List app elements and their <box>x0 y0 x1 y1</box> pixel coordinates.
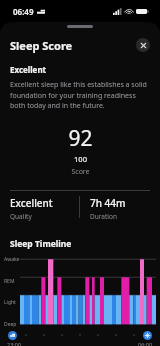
staticText: Sleep Timeline <box>10 238 72 250</box>
button[interactable]: Sleep start <box>8 331 17 340</box>
staticText: Light <box>4 299 16 306</box>
staticText: Duration <box>90 212 117 221</box>
staticText: 23:00 <box>7 341 22 346</box>
staticText: 92 <box>68 124 93 153</box>
staticText: 100 <box>74 154 87 164</box>
staticText: 06:00 <box>138 341 153 346</box>
button[interactable]: Close <box>136 38 150 52</box>
staticText: Awake <box>4 256 20 263</box>
staticText: REM <box>4 278 15 285</box>
staticText: Excellent <box>10 196 53 210</box>
staticText: Excellent <box>10 64 47 75</box>
staticText: 06:49 <box>13 6 34 17</box>
staticText: Quality <box>10 212 32 221</box>
staticText: Sleep Score <box>10 38 73 53</box>
staticText: Score <box>71 167 90 177</box>
staticText: 7h 44m <box>90 196 126 210</box>
staticText: Deep <box>4 321 17 328</box>
button[interactable]: Wake time <box>143 331 152 340</box>
staticText: Excellent sleep like this establishes a … <box>10 80 150 110</box>
